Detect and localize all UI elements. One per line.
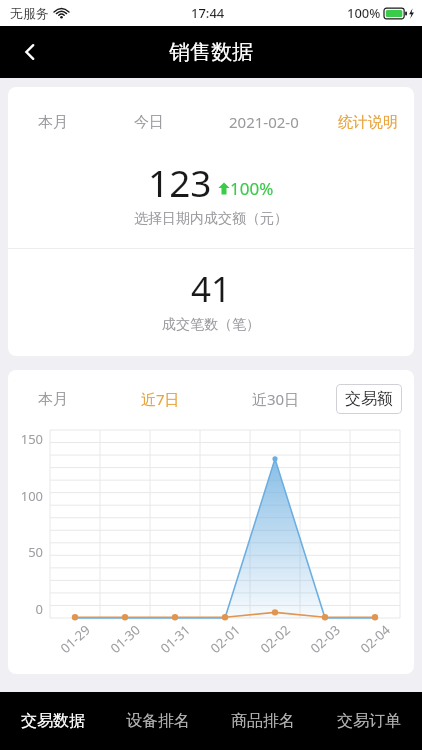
staticText: 2021-02-0 (229, 112, 299, 132)
staticText: 150 (20, 430, 43, 448)
staticText: 设备排名 (126, 711, 190, 731)
staticText: 100 (20, 487, 43, 505)
button[interactable]: 2021-02-0 (229, 107, 299, 137)
button[interactable]: 近7日 (141, 384, 180, 414)
staticText: 统计说明 (338, 113, 398, 132)
staticText: 02-02 (256, 621, 294, 657)
button[interactable]: 统计说明 (338, 108, 398, 137)
staticText: 无服务 (10, 5, 49, 21)
button[interactable]: Back (8, 30, 52, 74)
staticText: 销售数据 (169, 39, 253, 65)
staticText: 02-01 (206, 621, 244, 657)
staticText: 成交笔数（笔） (8, 316, 414, 334)
staticText: 0 (35, 600, 43, 618)
staticText: 交易订单 (337, 711, 401, 731)
staticText: 123 (148, 157, 212, 207)
staticText: 选择日期内成交额（元） (8, 210, 414, 228)
staticText: 交易额 (345, 389, 393, 409)
staticText: 17:44 (191, 4, 225, 22)
staticText: 交易数据 (21, 711, 85, 731)
staticText: 41 (8, 265, 414, 313)
staticText: 商品排名 (231, 711, 295, 731)
button[interactable]: 近30日 (252, 384, 300, 414)
staticText: 01-29 (56, 621, 94, 657)
staticText: 01-30 (106, 621, 144, 657)
staticText: 本月 (38, 390, 68, 409)
button[interactable]: 本月 (38, 108, 68, 137)
button[interactable]: 交易数据 (0, 692, 105, 750)
staticText: 近7日 (141, 389, 180, 409)
staticText: 100% (230, 177, 274, 200)
staticText: 100% (347, 4, 381, 22)
staticText: 02-03 (306, 621, 344, 657)
button[interactable]: 商品排名 (210, 692, 316, 750)
staticText: 近30日 (252, 389, 300, 409)
button[interactable]: 交易订单 (316, 692, 422, 750)
button[interactable]: 本月 (38, 385, 68, 414)
button[interactable]: 今日 (134, 108, 164, 137)
button[interactable]: 交易额 (336, 384, 402, 414)
staticText: 今日 (134, 113, 164, 132)
staticText: 50 (28, 543, 43, 561)
staticText: 01-31 (156, 621, 194, 657)
staticText: 02-04 (356, 621, 394, 657)
staticText: 本月 (38, 113, 68, 132)
button[interactable]: 设备排名 (105, 692, 210, 750)
